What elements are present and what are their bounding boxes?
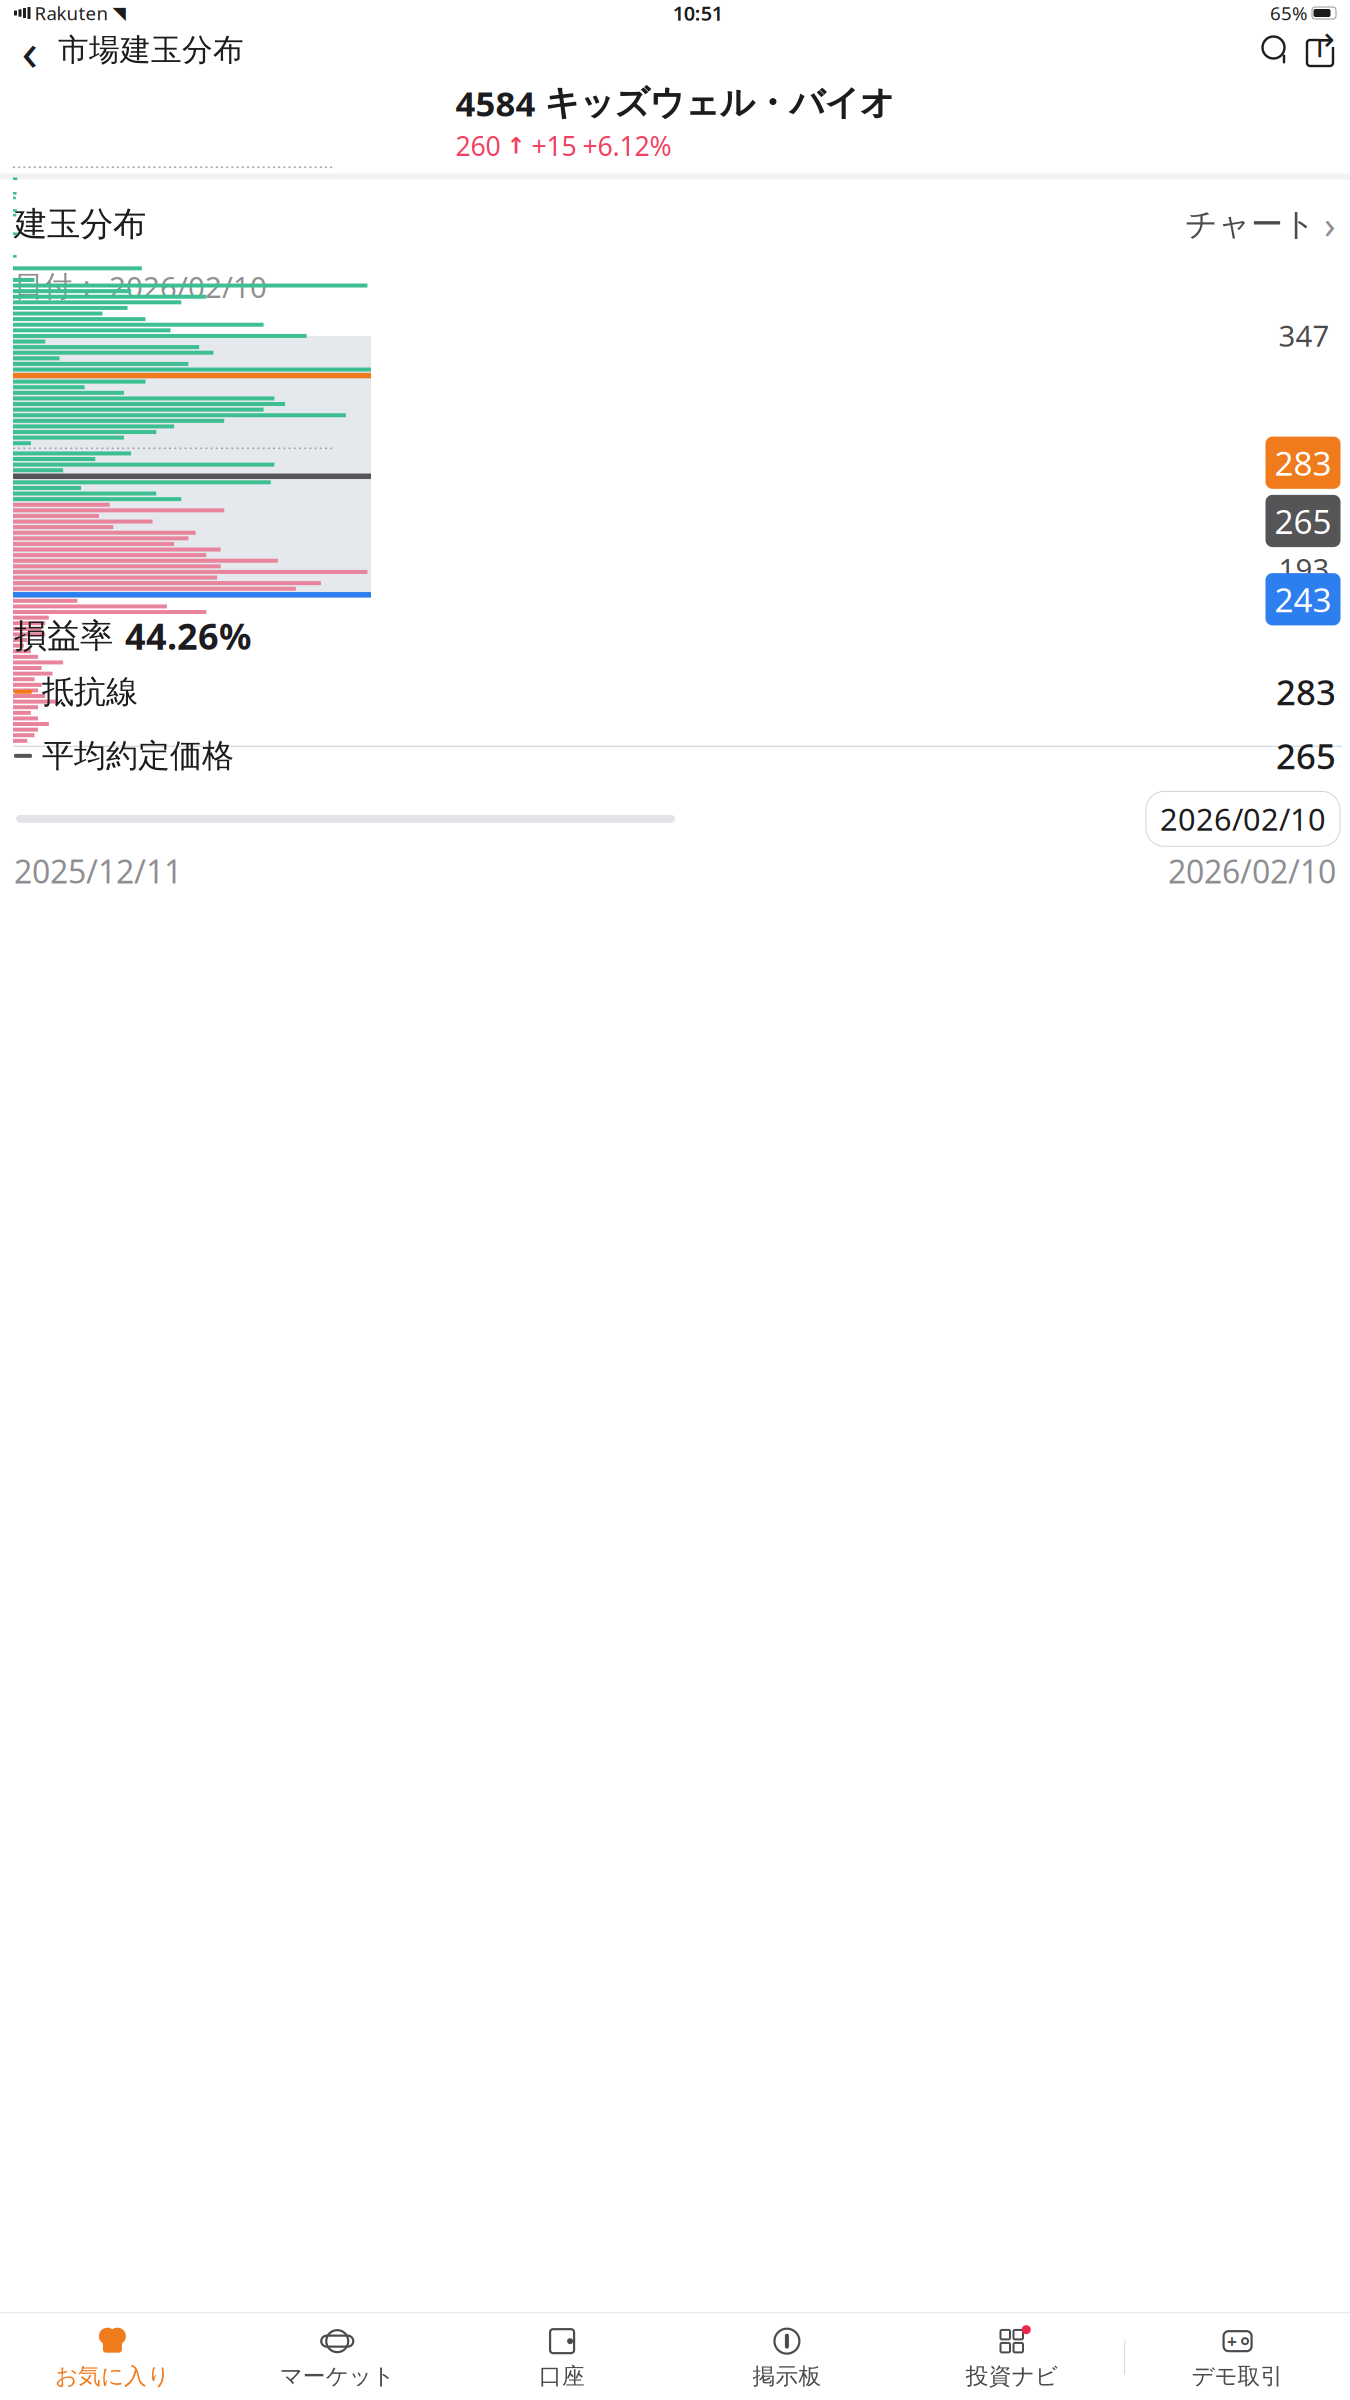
staticText: 260 [455, 128, 500, 163]
button[interactable]: + [1125, 2319, 1350, 2396]
staticText: お気に入り [55, 2362, 170, 2390]
staticText: 44.26% [125, 612, 251, 660]
staticText: + [1227, 2330, 1237, 2353]
staticText: ↱ [1311, 28, 1338, 64]
staticText: 4584 [455, 80, 535, 126]
button[interactable]: マーケット [225, 2319, 450, 2396]
staticText: › [1324, 199, 1336, 249]
button[interactable]: 投資ナビ [899, 2319, 1124, 2396]
staticText: 損益率 [14, 615, 113, 656]
staticText: Rakuten [34, 1, 108, 25]
staticText: 日付： [14, 268, 101, 304]
staticText: 265 [1274, 499, 1331, 543]
staticText: 平均約定価格 [42, 736, 234, 775]
staticText: 65% [1270, 1, 1308, 25]
button[interactable]: Back [8, 28, 52, 72]
staticText: 283 [1276, 669, 1336, 715]
staticText: 掲示板 [752, 2362, 821, 2390]
button[interactable]: Search [1254, 28, 1298, 72]
button[interactable]: Share [1298, 28, 1342, 72]
staticText: +15 [531, 128, 576, 163]
staticText: 265 [1276, 733, 1336, 779]
staticText: 口座 [539, 2362, 585, 2390]
staticText: 2026/02/10 [1160, 798, 1326, 839]
staticText: 市場建玉分布 [58, 31, 244, 69]
staticText: 10:51 [673, 0, 723, 26]
button[interactable]: お気に入り [0, 2319, 225, 2396]
staticText: 投資ナビ [966, 2362, 1058, 2390]
staticText: マーケット [280, 2362, 395, 2390]
staticText: +6.12% [582, 128, 671, 163]
button[interactable]: チャート [1185, 195, 1336, 253]
staticText: 193 [1278, 549, 1329, 588]
staticText: ↑ [506, 133, 525, 159]
staticText: 抵抗線 [42, 672, 138, 711]
staticText: チャート [1185, 205, 1316, 244]
button[interactable]: 口座 [450, 2319, 674, 2396]
staticText: 建玉分布 [14, 204, 146, 245]
button[interactable]: 掲示板 [674, 2319, 899, 2396]
staticText: 2026/02/10 [109, 267, 267, 306]
staticText: ‹ [21, 15, 38, 85]
staticText: ◥ [112, 3, 125, 23]
staticText: 347 [1278, 316, 1329, 355]
staticText: 2025/12/11 [14, 850, 182, 892]
staticText: 2026/02/10 [1168, 850, 1336, 892]
staticText: デモ取引 [1192, 2362, 1284, 2390]
staticText: 243 [1274, 577, 1331, 621]
staticText: 283 [1274, 441, 1331, 485]
staticText: キッズウェル・バイオ [544, 82, 894, 124]
